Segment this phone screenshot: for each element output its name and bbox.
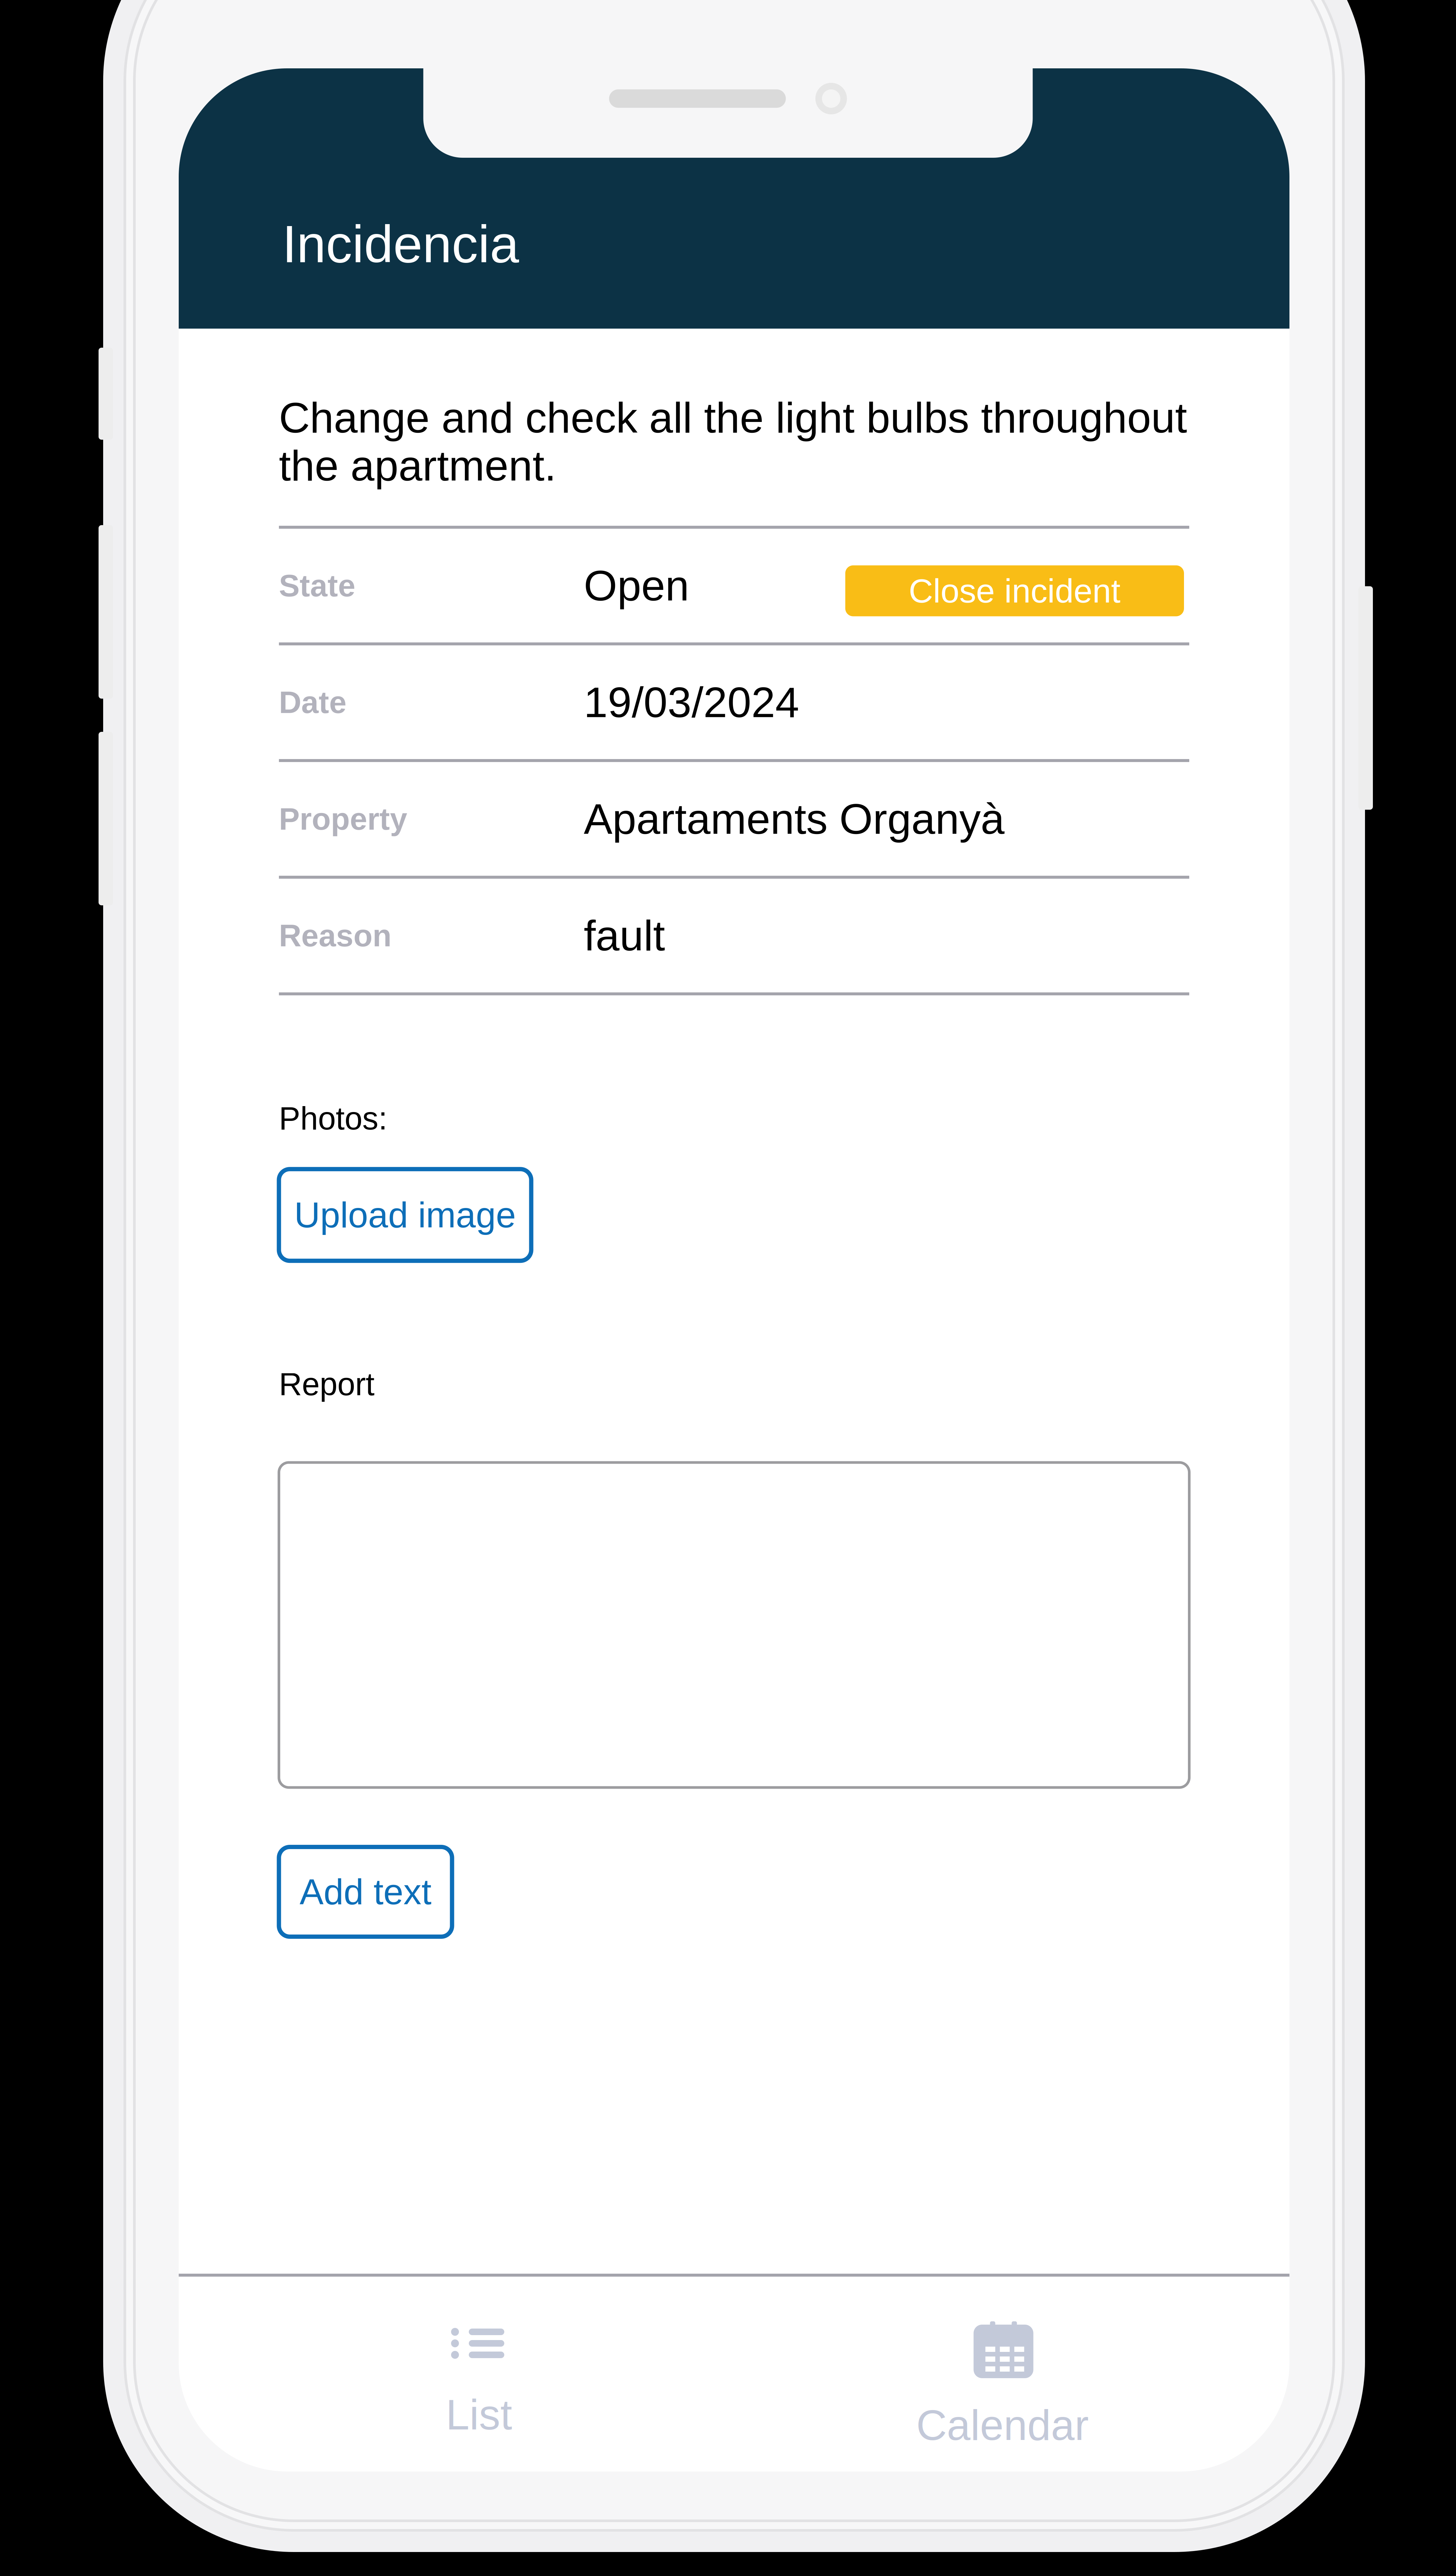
staticText: Apartaments Organyà [584,795,1005,843]
staticText: Date [279,685,347,720]
staticText: List [446,2391,512,2438]
button[interactable]: List [179,2277,734,2474]
button[interactable]: Upload image [279,1169,531,1261]
staticText: State [279,568,355,603]
staticText: Calendar [916,2402,1089,2449]
staticText: Photos: [279,1101,387,1136]
button[interactable]: Close incident [845,560,1184,611]
staticText: Report [279,1366,375,1402]
staticText: Close incident [909,572,1121,610]
staticText: 19/03/2024 [584,678,799,726]
button[interactable]: Add text [279,1847,452,1937]
button[interactable]: Calendar [734,2277,1289,2474]
staticText: Upload image [294,1195,516,1235]
staticText: Reason [279,918,392,953]
staticText: Open [584,562,689,610]
staticText: Property [279,802,407,836]
staticText: Add text [300,1872,431,1912]
staticText: Incidencia [282,215,519,273]
staticText: Change and check all the light bulbs thr… [279,394,1187,490]
staticText: fault [584,912,665,960]
